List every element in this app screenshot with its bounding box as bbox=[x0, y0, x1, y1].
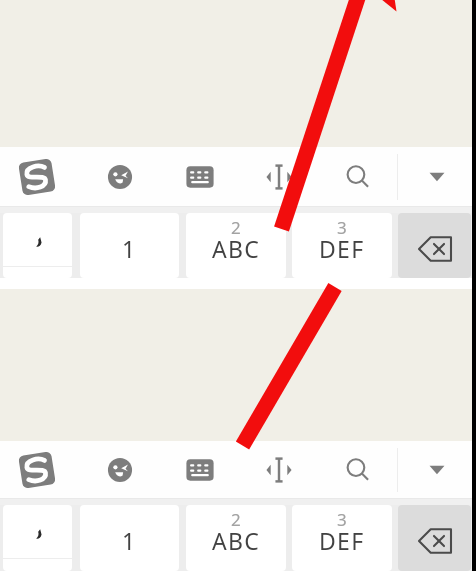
button[interactable]: Move cursor bbox=[239, 441, 318, 499]
button[interactable]: Search bbox=[318, 147, 397, 207]
button[interactable]: Move cursor bbox=[239, 147, 318, 207]
staticText: 2 bbox=[231, 508, 241, 531]
button[interactable]: Emoji bbox=[80, 441, 160, 499]
other: Backspace bbox=[415, 226, 455, 266]
button[interactable]: Search bbox=[318, 441, 397, 499]
button[interactable]: Hide keyboard bbox=[397, 147, 476, 207]
staticText: 1 bbox=[122, 233, 137, 264]
button[interactable]: 1 bbox=[80, 213, 179, 278]
button[interactable] bbox=[3, 213, 72, 278]
staticText: DEF bbox=[319, 525, 365, 556]
button[interactable]: Hide keyboard bbox=[397, 441, 476, 499]
staticText: ABC bbox=[212, 525, 261, 556]
staticText: 3 bbox=[337, 216, 347, 239]
button[interactable] bbox=[3, 505, 72, 571]
button[interactable]: Backspace bbox=[398, 505, 471, 571]
button[interactable]: Keyboard bbox=[160, 441, 239, 499]
staticText: 3 bbox=[337, 508, 347, 531]
button[interactable]: 1 bbox=[80, 505, 179, 571]
button[interactable]: 2 bbox=[186, 213, 286, 278]
button[interactable]: 2 bbox=[186, 505, 286, 571]
button[interactable]: Keyboard bbox=[160, 147, 239, 207]
button[interactable]: 3 bbox=[292, 213, 392, 278]
staticText: 2 bbox=[231, 216, 241, 239]
staticText: 1 bbox=[122, 525, 137, 556]
staticText: DEF bbox=[319, 233, 365, 264]
button[interactable]: Backspace bbox=[398, 213, 471, 278]
button[interactable]: Emoji bbox=[80, 147, 160, 207]
button[interactable]: Sogou input bbox=[0, 147, 80, 207]
other: Backspace bbox=[415, 518, 455, 558]
staticText: ABC bbox=[212, 233, 261, 264]
button[interactable]: 3 bbox=[292, 505, 392, 571]
button[interactable]: Sogou input bbox=[0, 441, 80, 499]
